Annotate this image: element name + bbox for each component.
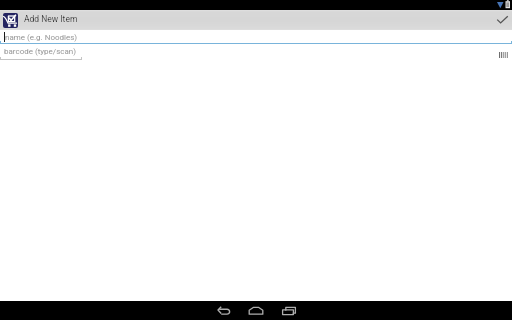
- button[interactable]: barcode (type/scan): [0, 46, 82, 60]
- button[interactable]: Save item: [492, 10, 512, 30]
- button[interactable]: name (e.g. Noodles): [0, 31, 512, 45]
- button[interactable]: Back: [207, 301, 239, 320]
- staticText: Add New Item: [24, 14, 78, 24]
- staticText: barcode (type/scan): [4, 47, 77, 56]
- button[interactable]: Recent apps: [271, 301, 303, 320]
- button[interactable]: Scan barcode: [495, 46, 511, 62]
- button[interactable]: Navigate up: [3, 13, 18, 28]
- button[interactable]: Home: [239, 301, 271, 320]
- staticText: name (e.g. Noodles): [5, 33, 78, 42]
